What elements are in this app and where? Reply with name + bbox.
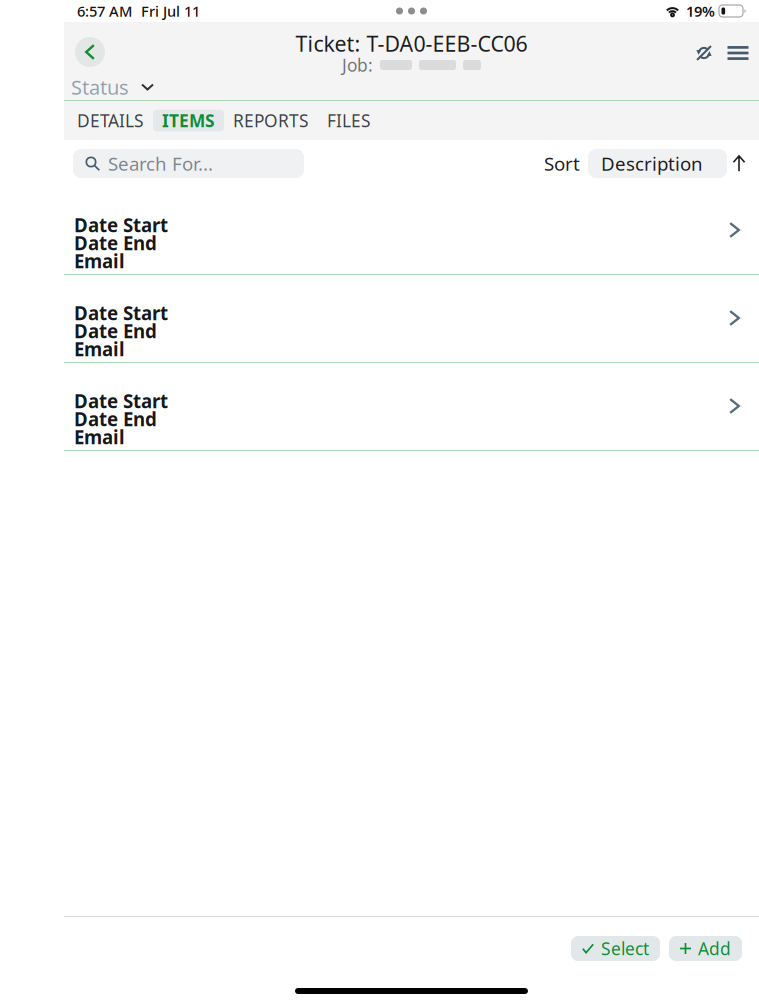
staticText: DETAILS	[77, 109, 144, 132]
button[interactable]: Add	[669, 936, 742, 961]
button[interactable]: DETAILS	[68, 101, 153, 139]
button[interactable]: Status	[71, 75, 154, 99]
staticText: Status	[71, 74, 129, 100]
staticText: Email	[74, 425, 125, 449]
staticText: 6:57 AM	[77, 1, 132, 21]
staticText: Fri Jul 11	[141, 1, 200, 21]
staticText: Date Start	[74, 213, 168, 237]
button[interactable]: Search For...	[73, 149, 304, 178]
button[interactable]: Sync paused	[688, 37, 720, 69]
button[interactable]: ITEMS	[153, 101, 224, 139]
staticText: Select	[601, 937, 649, 960]
button[interactable]: Sort ascending	[727, 150, 751, 176]
button[interactable]: Back	[69, 31, 111, 73]
button[interactable]: Menu	[722, 37, 754, 69]
staticText: Ticket: T-DA0-EEB-CC06	[295, 29, 527, 58]
button[interactable]: FILES	[318, 101, 380, 139]
button[interactable]: REPORTS	[224, 101, 318, 139]
staticText: Email	[74, 249, 125, 273]
staticText: Date Start	[74, 389, 168, 413]
staticText: ITEMS	[162, 109, 215, 132]
staticText: Email	[74, 337, 125, 361]
staticText: Date Start	[74, 301, 168, 325]
button[interactable]: Date Start	[64, 363, 759, 450]
button[interactable]: Description	[588, 149, 727, 178]
staticText: FILES	[327, 109, 371, 132]
staticText: Description	[601, 151, 703, 176]
staticText: Job:	[342, 53, 373, 76]
staticText: REPORTS	[233, 109, 309, 132]
staticText: Search For...	[108, 151, 213, 176]
staticText: Add	[698, 937, 731, 960]
button[interactable]: Date Start	[64, 187, 759, 274]
staticText: Date End	[74, 231, 157, 255]
button[interactable]: Date Start	[64, 275, 759, 362]
staticText: Date End	[74, 319, 157, 343]
staticText: Date End	[74, 407, 157, 431]
staticText: 19%	[686, 1, 715, 21]
button[interactable]: Select	[571, 936, 660, 961]
staticText: Sort	[544, 151, 580, 176]
